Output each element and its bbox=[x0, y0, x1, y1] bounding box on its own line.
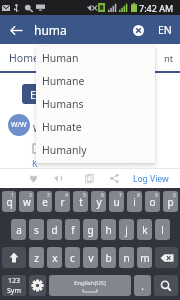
button[interactable]: a bbox=[11, 219, 26, 240]
button[interactable]: Search bbox=[154, 275, 178, 296]
staticText: m bbox=[140, 251, 150, 265]
staticText: Humane bbox=[42, 74, 85, 88]
button[interactable]: Log View bbox=[130, 169, 172, 188]
button[interactable]: Human bbox=[36, 46, 155, 69]
staticText: Home bbox=[9, 51, 39, 65]
staticText: a bbox=[16, 223, 22, 237]
button[interactable]: Humanly bbox=[36, 138, 155, 161]
staticText: c bbox=[70, 251, 75, 265]
button[interactable]: Humate bbox=[36, 115, 155, 138]
button[interactable]: Settings bbox=[29, 275, 46, 296]
staticText: x bbox=[52, 251, 58, 265]
button[interactable]: u bbox=[109, 191, 124, 212]
staticText: l bbox=[161, 223, 164, 237]
staticText: p bbox=[167, 195, 174, 209]
staticText: 9 bbox=[155, 192, 158, 199]
staticText: . bbox=[141, 279, 144, 293]
button[interactable]: E bbox=[22, 84, 44, 104]
button[interactable]: Share bbox=[105, 169, 123, 188]
button[interactable]: Home bbox=[7, 49, 41, 67]
staticText: o bbox=[149, 195, 156, 209]
staticText: 123 bbox=[8, 276, 21, 286]
staticText: 7 bbox=[119, 192, 122, 199]
staticText: f bbox=[71, 223, 75, 237]
staticText: 4 bbox=[65, 192, 68, 199]
staticText: g bbox=[87, 223, 94, 237]
staticText: b bbox=[105, 251, 112, 265]
staticText: z bbox=[34, 251, 39, 265]
staticText: 8 bbox=[137, 192, 140, 199]
button[interactable]: l bbox=[155, 219, 170, 240]
button[interactable]: t bbox=[73, 191, 88, 212]
staticText: v bbox=[88, 251, 94, 265]
staticText: Humate bbox=[42, 120, 82, 134]
staticText: n bbox=[123, 251, 130, 265]
staticText: E bbox=[30, 87, 37, 102]
staticText: t bbox=[79, 195, 83, 209]
button[interactable]: Favorite bbox=[24, 169, 42, 188]
staticText: d bbox=[51, 223, 58, 237]
staticText: Human bbox=[42, 51, 79, 65]
button[interactable]: Copy bbox=[80, 169, 98, 188]
button[interactable]: m bbox=[137, 247, 152, 268]
staticText: Humanly bbox=[42, 143, 87, 157]
button[interactable]: g bbox=[83, 219, 98, 240]
staticText: y bbox=[96, 195, 102, 209]
button[interactable]: Clear text bbox=[126, 18, 150, 42]
button[interactable]: nt bbox=[162, 50, 176, 67]
button[interactable]: Humans bbox=[36, 92, 155, 115]
staticText: nt bbox=[164, 52, 174, 65]
button[interactable]: k bbox=[137, 219, 152, 240]
staticText: EN bbox=[158, 23, 172, 37]
button[interactable]: Back bbox=[4, 18, 28, 42]
button[interactable]: Shift bbox=[2, 247, 26, 268]
button[interactable]: h bbox=[101, 219, 116, 240]
button[interactable]: x bbox=[47, 247, 62, 268]
button[interactable]: q bbox=[2, 191, 16, 212]
staticText: k bbox=[142, 223, 148, 237]
button[interactable]: Delete bbox=[155, 247, 178, 268]
button[interactable]: Humane bbox=[36, 69, 155, 92]
staticText: e bbox=[42, 195, 48, 209]
button[interactable]: f bbox=[65, 219, 80, 240]
staticText: j bbox=[125, 223, 128, 237]
button[interactable]: z bbox=[29, 247, 44, 268]
staticText: w bbox=[23, 195, 31, 209]
button[interactable]: b bbox=[101, 247, 116, 268]
staticText: 7:42 AM bbox=[139, 2, 174, 14]
button[interactable]: . bbox=[134, 275, 151, 296]
staticText: u bbox=[113, 195, 120, 209]
staticText: W bbox=[33, 122, 42, 134]
staticText: q bbox=[6, 195, 13, 209]
button[interactable]: w bbox=[19, 191, 34, 212]
staticText: W/W bbox=[11, 120, 27, 130]
button[interactable]: c bbox=[65, 247, 80, 268]
button[interactable]: Pronounce bbox=[49, 169, 67, 188]
button[interactable]: W/W bbox=[8, 114, 30, 136]
button[interactable]: p bbox=[163, 191, 178, 212]
staticText: 5 bbox=[83, 192, 86, 199]
button[interactable]: s bbox=[29, 219, 44, 240]
button[interactable]: Symbols bbox=[2, 275, 26, 296]
button[interactable]: Space bbox=[49, 275, 131, 296]
staticText: 2 bbox=[29, 192, 32, 199]
staticText: r bbox=[60, 195, 65, 209]
button[interactable]: e bbox=[37, 191, 52, 212]
staticText: 1 bbox=[11, 192, 14, 199]
button[interactable]: i bbox=[127, 191, 142, 212]
staticText: h bbox=[105, 223, 112, 237]
button[interactable]: j bbox=[119, 219, 134, 240]
staticText: huma bbox=[34, 22, 67, 38]
staticText: Sym bbox=[7, 286, 21, 296]
button[interactable]: EN bbox=[153, 18, 177, 42]
button[interactable]: n bbox=[119, 247, 134, 268]
staticText: s bbox=[34, 223, 39, 237]
button[interactable]: o bbox=[145, 191, 160, 212]
button[interactable]: y bbox=[91, 191, 106, 212]
button[interactable]: d bbox=[47, 219, 62, 240]
staticText: Log View bbox=[133, 173, 169, 185]
staticText: K bbox=[32, 157, 38, 169]
button[interactable]: r bbox=[55, 191, 70, 212]
button[interactable]: v bbox=[83, 247, 98, 268]
staticText: Humans bbox=[42, 97, 84, 111]
